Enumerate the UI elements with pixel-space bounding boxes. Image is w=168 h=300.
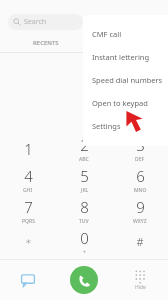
- staticText: ABC: [79, 156, 89, 163]
- staticText: Settings: [92, 121, 121, 131]
- button[interactable]: 9: [112, 195, 168, 226]
- button[interactable]: 1: [0, 133, 56, 164]
- button[interactable]: RECENTS: [8, 35, 83, 50]
- button[interactable]: 6: [112, 164, 168, 195]
- button[interactable]: Speed dial numbers: [92, 68, 168, 91]
- button[interactable]: 7: [0, 195, 56, 226]
- staticText: JKL: [81, 187, 89, 194]
- staticText: 1: [24, 139, 33, 159]
- staticText: 0: [80, 228, 89, 248]
- staticText: 4: [24, 166, 33, 186]
- button[interactable]: Hide keypad: [112, 260, 168, 300]
- staticText: CMF call: [92, 29, 122, 39]
- staticText: 8: [80, 197, 89, 217]
- staticText: 3: [136, 135, 145, 155]
- staticText: 6: [136, 166, 145, 186]
- button[interactable]: 8: [56, 195, 112, 226]
- staticText: ∗: [25, 235, 32, 248]
- button[interactable]: 2: [56, 133, 112, 164]
- staticText: Instant lettering: [92, 52, 150, 62]
- staticText: +: [83, 249, 86, 256]
- staticText: RECENTS: [33, 39, 59, 47]
- staticText: GHI: [23, 187, 33, 194]
- button[interactable]: 3: [112, 133, 168, 164]
- other: Search: [13, 18, 21, 26]
- button[interactable]: Open to keypad: [92, 91, 168, 114]
- button[interactable]: Call: [70, 266, 98, 294]
- button[interactable]: ∗: [0, 226, 56, 257]
- button[interactable]: Settings: [92, 114, 168, 137]
- staticText: Speed dial numbers: [92, 75, 163, 85]
- staticText: Open to keypad: [92, 98, 148, 108]
- staticText: Search: [24, 17, 47, 27]
- staticText: 2: [80, 135, 89, 155]
- button[interactable]: Message: [0, 260, 56, 300]
- staticText: DEF: [135, 156, 145, 163]
- staticText: 9: [136, 197, 145, 217]
- staticText: 7: [24, 197, 33, 217]
- button[interactable]: 5: [56, 164, 112, 195]
- staticText: PQRS: [22, 218, 35, 225]
- staticText: #: [136, 234, 144, 249]
- staticText: WXYZ: [133, 218, 147, 225]
- button[interactable]: CMF call: [92, 22, 168, 45]
- staticText: Hide: [135, 284, 146, 291]
- button[interactable]: #: [112, 226, 168, 257]
- button[interactable]: 4: [0, 164, 56, 195]
- staticText: TUV: [79, 218, 89, 225]
- button[interactable]: Instant lettering: [92, 45, 168, 68]
- staticText: MNO: [134, 187, 147, 194]
- button[interactable]: 0: [56, 226, 112, 257]
- staticText: 5: [80, 166, 89, 186]
- button[interactable]: Search: [8, 14, 83, 30]
